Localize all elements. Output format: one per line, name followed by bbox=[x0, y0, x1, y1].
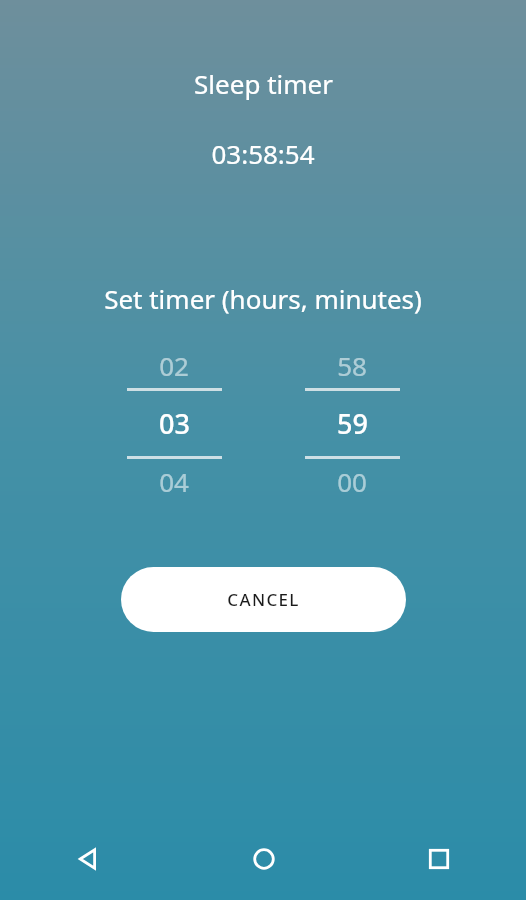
button[interactable]: 59 bbox=[297, 391, 407, 456]
button[interactable]: 58 bbox=[297, 346, 407, 385]
button[interactable]: CANCEL bbox=[121, 567, 406, 632]
staticText: 00 bbox=[337, 464, 367, 499]
button[interactable]: Recent apps bbox=[351, 818, 526, 900]
button[interactable]: 00 bbox=[297, 462, 407, 501]
staticText: 02 bbox=[159, 348, 189, 383]
button[interactable]: 02 bbox=[119, 346, 229, 385]
staticText: 59 bbox=[337, 405, 368, 442]
staticText: 58 bbox=[337, 348, 367, 383]
staticText: Sleep timer bbox=[194, 66, 333, 101]
button[interactable]: Back bbox=[0, 818, 176, 900]
staticText: Set timer (hours, minutes) bbox=[104, 281, 422, 316]
staticText: 03 bbox=[159, 405, 190, 442]
staticText: 04 bbox=[159, 464, 189, 499]
button[interactable]: 03 bbox=[119, 391, 229, 456]
button[interactable]: Home bbox=[176, 818, 351, 900]
staticText: 03:58:54 bbox=[211, 136, 315, 171]
button[interactable]: 04 bbox=[119, 462, 229, 501]
staticText: CANCEL bbox=[227, 588, 300, 611]
